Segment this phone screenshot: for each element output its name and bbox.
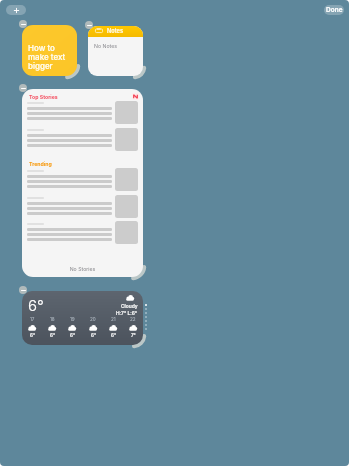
staticText: H:7° L:6° (116, 310, 138, 316)
staticText: Cloudy (121, 303, 138, 309)
staticText: Notes (107, 28, 123, 35)
staticText: 20 (90, 317, 96, 323)
staticText: 6° (30, 333, 35, 339)
staticText: 6° (70, 333, 75, 339)
button[interactable]: 6° (22, 291, 143, 345)
staticText: How to make text bigger (28, 43, 66, 71)
button[interactable]: Remove widget (19, 20, 27, 28)
button[interactable]: Remove widget (19, 84, 27, 92)
staticText: 17 (30, 317, 35, 323)
button[interactable]: Remove widget (85, 21, 93, 29)
button[interactable]: Done (324, 5, 344, 15)
staticText: 19 (70, 317, 75, 323)
staticText: No Stories (22, 266, 143, 272)
staticText: 22 (130, 317, 136, 323)
staticText: No Notes (94, 43, 117, 49)
button[interactable]: How to make text bigger (22, 25, 77, 76)
staticText: 21 (111, 317, 116, 323)
staticText: 6° (111, 333, 116, 339)
staticText: 6° (91, 333, 96, 339)
button[interactable]: Remove widget (19, 286, 27, 294)
staticText: Done (326, 6, 343, 14)
button[interactable]: Add widget (6, 5, 26, 15)
button[interactable]: Top Stories (22, 89, 143, 277)
staticText: Top Stories (29, 94, 58, 100)
staticText: 6° (28, 296, 44, 314)
button[interactable]: Notes (88, 26, 143, 76)
staticText: 7° (131, 333, 136, 339)
staticText: 6° (50, 333, 55, 339)
staticText: Trending (29, 161, 52, 167)
staticText: 18 (50, 317, 55, 323)
